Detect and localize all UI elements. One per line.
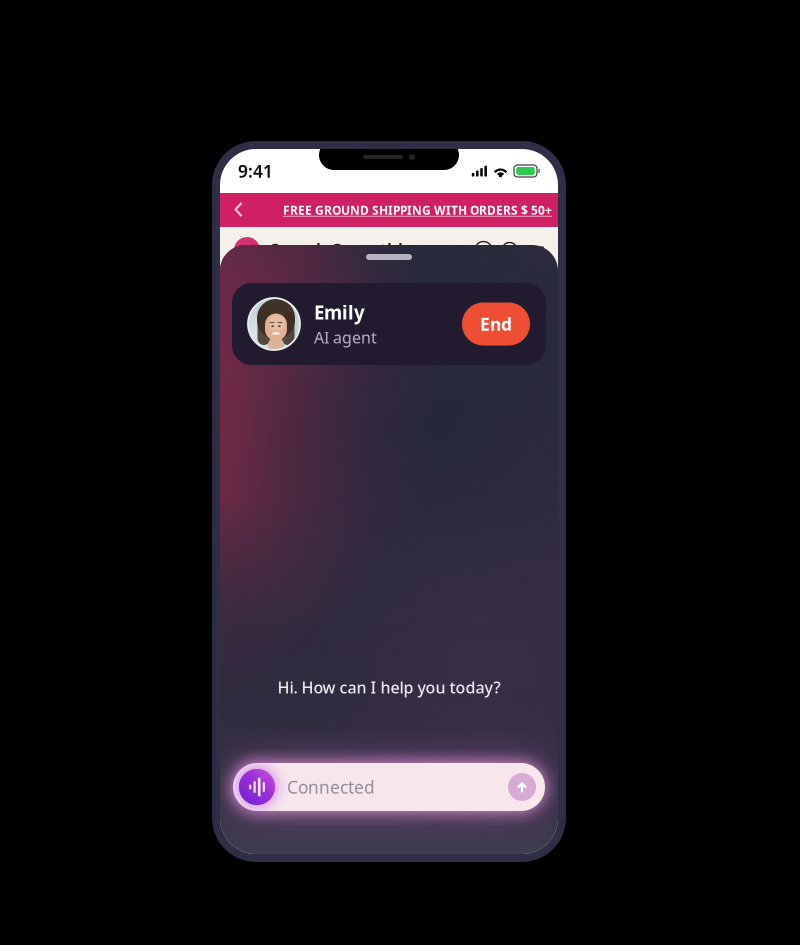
- button[interactable]: Voice input: [239, 769, 275, 805]
- staticText: AI agent: [314, 327, 377, 348]
- staticText: Search Something: [270, 238, 425, 261]
- staticText: End: [480, 312, 512, 335]
- button[interactable]: Back: [222, 193, 256, 226]
- staticText: FREE GROUND SHIPPING WITH ORDERS $ 50+: [283, 202, 552, 218]
- staticText: Emily: [314, 300, 365, 325]
- staticText: 9:41: [238, 159, 273, 182]
- button[interactable]: End: [462, 302, 530, 345]
- staticText: Hi. How can I help you today?: [277, 677, 500, 698]
- staticText: Connected: [287, 775, 375, 798]
- button[interactable]: Send: [508, 773, 536, 801]
